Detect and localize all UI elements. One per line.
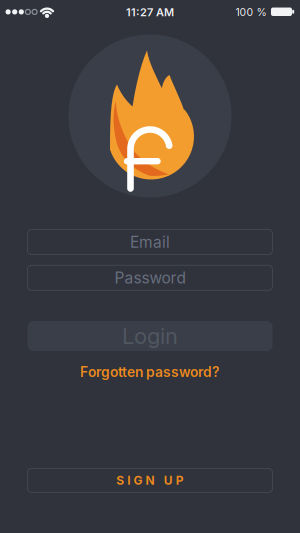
staticText: 100 % <box>235 6 266 19</box>
staticText: 11:27 AM <box>126 6 174 19</box>
staticText: Email <box>130 233 170 251</box>
staticText: Login <box>122 323 178 349</box>
staticText: SIGN UP <box>116 473 184 488</box>
button[interactable]: Email <box>27 229 272 254</box>
button[interactable]: SIGN UP <box>27 468 272 492</box>
button[interactable]: Forgotten password? <box>80 364 220 380</box>
staticText: Password <box>114 268 185 287</box>
staticText: Forgotten password? <box>80 364 220 380</box>
button[interactable]: Login <box>27 321 272 351</box>
button[interactable]: Password <box>27 265 272 290</box>
